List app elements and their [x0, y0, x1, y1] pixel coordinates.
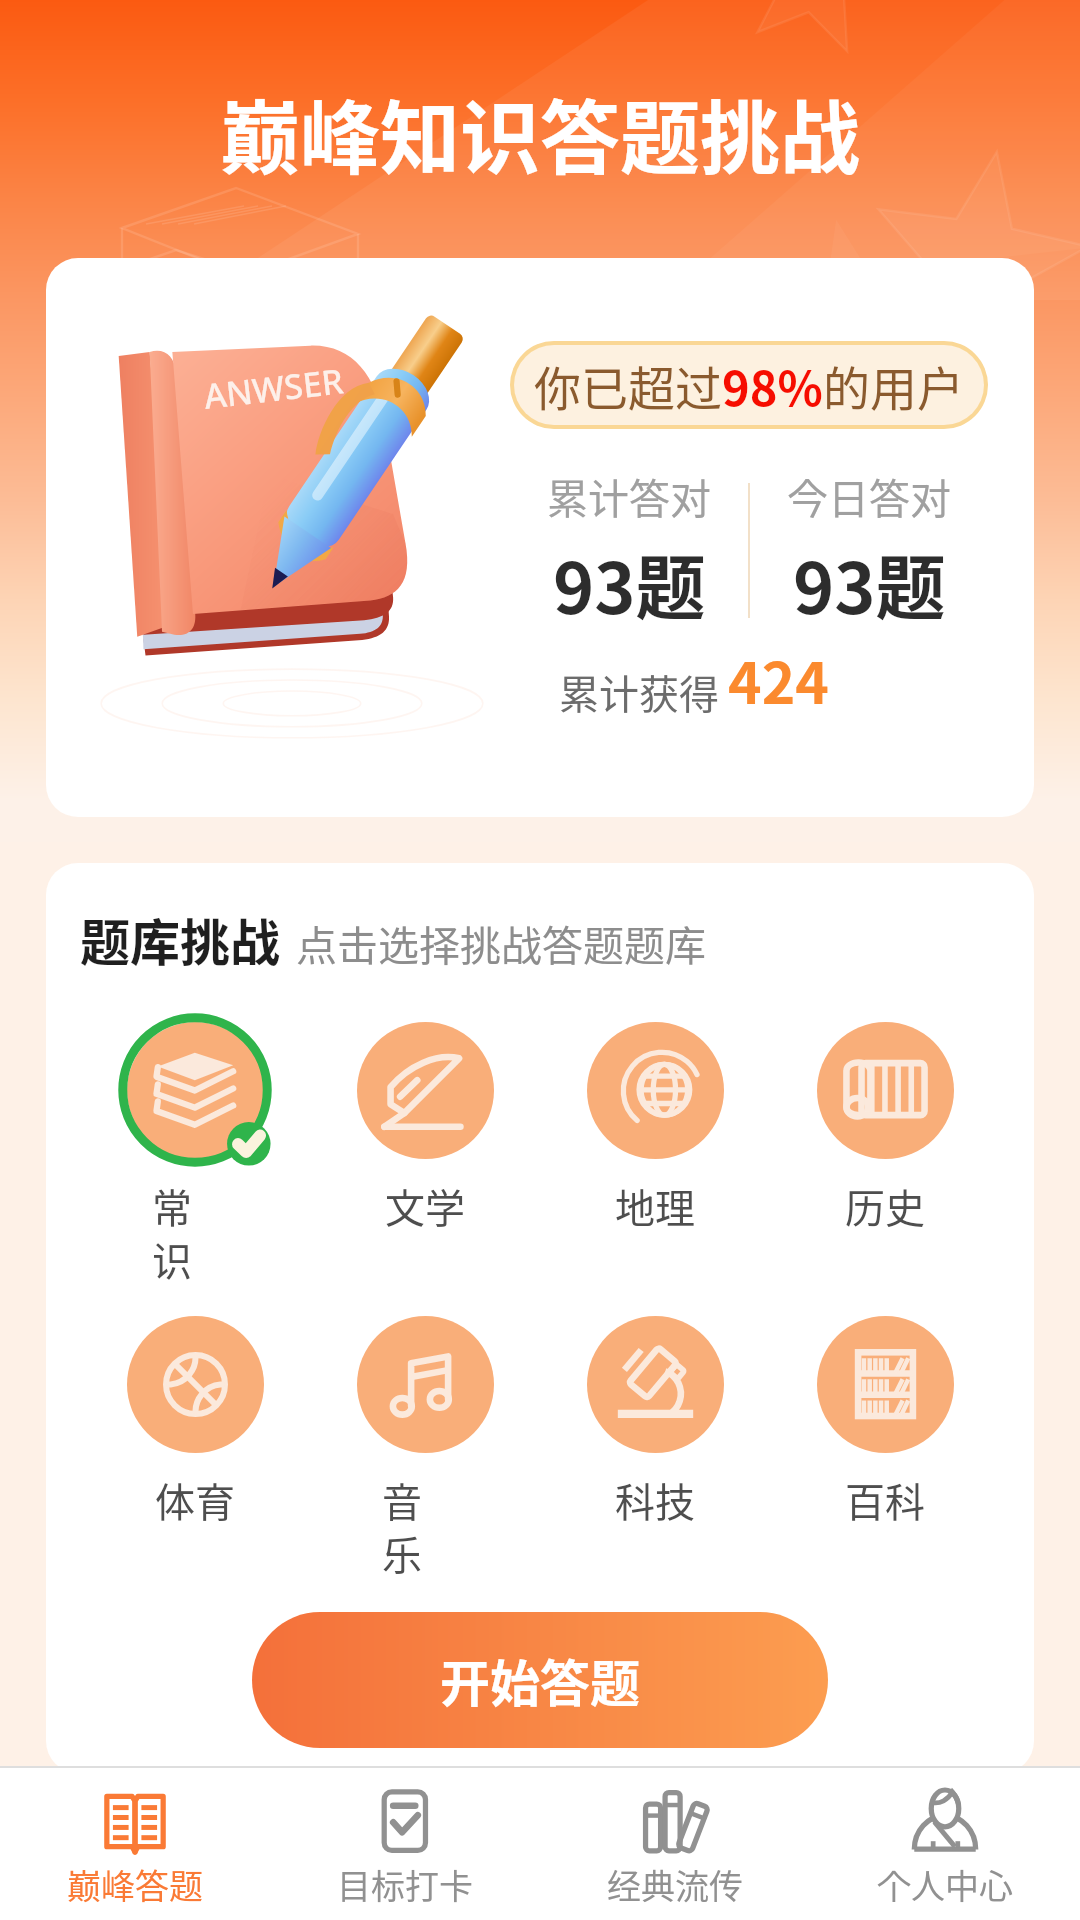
- staticText: 题库挑战: [80, 903, 280, 975]
- button[interactable]: 百科: [770, 1309, 1000, 1529]
- staticText: 巅峰答题: [67, 1860, 203, 1909]
- staticText: 93题: [553, 533, 706, 634]
- staticText: 98%: [722, 351, 823, 419]
- button[interactable]: 开始答题: [252, 1612, 828, 1748]
- button[interactable]: 历史: [770, 1015, 1000, 1235]
- staticText: 常识: [152, 1177, 196, 1287]
- button[interactable]: 常识: [80, 1015, 310, 1287]
- staticText: 百科: [785, 1471, 985, 1529]
- staticText: 你已超过: [534, 351, 722, 419]
- staticText: 目标打卡: [337, 1860, 473, 1909]
- staticText: 424: [728, 638, 829, 721]
- staticText: 个人中心: [877, 1860, 1013, 1909]
- button[interactable]: 文学: [310, 1015, 540, 1235]
- button[interactable]: 科技: [540, 1309, 770, 1529]
- staticText: 文学: [325, 1177, 525, 1235]
- staticText: 今日答对: [787, 466, 951, 525]
- staticText: 地理: [555, 1177, 755, 1235]
- staticText: 经典流传: [607, 1860, 743, 1909]
- staticText: 音乐: [382, 1471, 426, 1581]
- staticText: ANWSER: [201, 357, 346, 419]
- button[interactable]: 音乐: [310, 1309, 540, 1581]
- staticText: 累计获得: [559, 663, 728, 721]
- button[interactable]: 经典流传: [540, 1768, 810, 1920]
- staticText: 的用户: [823, 351, 964, 419]
- button[interactable]: 体育: [80, 1309, 310, 1529]
- staticText: 点击选择挑战答题题库: [296, 913, 706, 972]
- button[interactable]: 巅峰答题: [0, 1768, 270, 1920]
- staticText: 体育: [95, 1471, 295, 1529]
- button[interactable]: 目标打卡: [270, 1768, 540, 1920]
- staticText: 93题: [793, 533, 946, 634]
- staticText: 科技: [555, 1471, 755, 1529]
- button[interactable]: 个人中心: [810, 1768, 1080, 1920]
- staticText: 累计答对: [547, 466, 711, 525]
- staticText: 历史: [785, 1177, 985, 1235]
- button[interactable]: 地理: [540, 1015, 770, 1235]
- staticText: 巅峰知识答题挑战: [0, 74, 1080, 190]
- staticText: 开始答题: [440, 1644, 640, 1716]
